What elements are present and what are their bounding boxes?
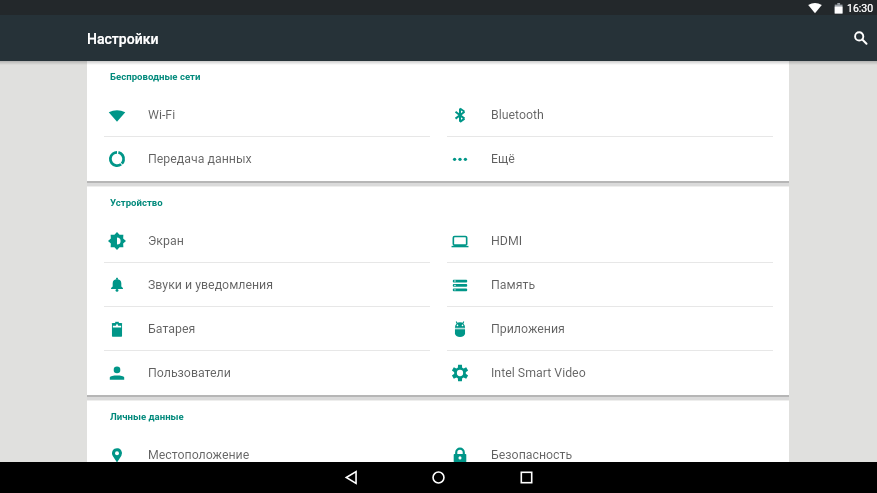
button[interactable]: Back: [338, 462, 364, 493]
staticText: Bluetooth: [491, 108, 544, 122]
staticText: Местоположение: [148, 448, 250, 462]
staticText: Безопасность: [491, 448, 573, 462]
staticText: Память: [491, 278, 536, 292]
button[interactable]: Передача данных: [95, 137, 438, 181]
button[interactable]: Wi-Fi: [95, 93, 438, 137]
staticText: HDMI: [491, 234, 523, 248]
staticText: Батарея: [148, 322, 196, 336]
staticText: Ещё: [491, 152, 515, 166]
staticText: Пользователи: [148, 366, 231, 380]
button[interactable]: Home: [425, 462, 451, 493]
button[interactable]: Звуки и уведомления: [95, 263, 438, 307]
button[interactable]: Приложения: [438, 307, 781, 351]
button[interactable]: Память: [438, 263, 781, 307]
staticText: Беспроводные сети: [110, 71, 201, 82]
staticText: Передача данных: [148, 152, 252, 166]
staticText: 16:30: [847, 2, 874, 14]
button[interactable]: Пользователи: [95, 351, 438, 395]
staticText: Настройки: [87, 31, 159, 47]
button[interactable]: Батарея: [95, 307, 438, 351]
staticText: Звуки и уведомления: [148, 278, 273, 292]
staticText: Wi-Fi: [148, 108, 176, 122]
button[interactable]: Ещё: [438, 137, 781, 181]
button[interactable]: Recents: [513, 462, 539, 493]
button[interactable]: Intel Smart Video: [438, 351, 781, 395]
staticText: Приложения: [491, 322, 565, 336]
button[interactable]: HDMI: [438, 219, 781, 263]
button[interactable]: Bluetooth: [438, 93, 781, 137]
button[interactable]: Search: [842, 15, 877, 61]
button[interactable]: Экран: [95, 219, 438, 263]
staticText: Устройство: [110, 197, 163, 208]
button[interactable]: Безопасность: [438, 433, 781, 477]
staticText: Личные данные: [110, 411, 184, 422]
staticText: Экран: [148, 234, 184, 248]
staticText: Intel Smart Video: [491, 366, 586, 380]
button[interactable]: Местоположение: [95, 433, 438, 477]
